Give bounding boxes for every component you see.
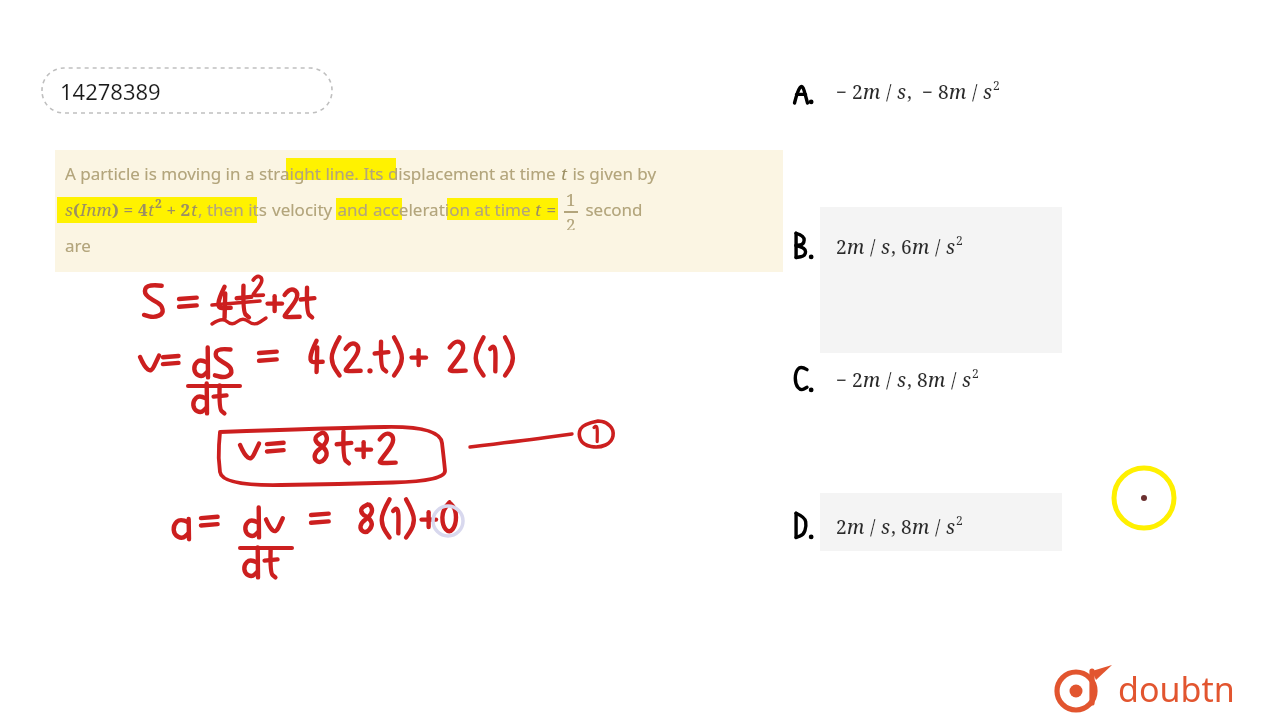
staticText: − bbox=[836, 367, 852, 393]
staticText: / bbox=[930, 234, 946, 260]
staticText: s bbox=[946, 234, 956, 260]
staticText: / bbox=[881, 79, 897, 105]
button[interactable]: 14278389 bbox=[42, 68, 332, 113]
staticText: A particle is moving in a bbox=[65, 162, 259, 185]
button[interactable]: − bbox=[790, 360, 1062, 400]
staticText: 6 bbox=[901, 234, 912, 260]
staticText: 2 bbox=[993, 77, 1000, 93]
staticText: acceleration bbox=[373, 198, 470, 221]
staticText: 2 bbox=[956, 232, 963, 248]
staticText: m bbox=[863, 367, 881, 393]
staticText: is given by bbox=[568, 162, 657, 185]
staticText: and bbox=[333, 198, 373, 221]
staticText: velocity bbox=[272, 198, 333, 221]
staticText: m bbox=[847, 514, 865, 540]
staticText: 14278389 bbox=[60, 76, 161, 106]
staticText: , then its bbox=[198, 198, 272, 221]
staticText: 1 bbox=[566, 188, 576, 211]
staticText: s bbox=[983, 79, 993, 105]
staticText: , bbox=[907, 79, 922, 105]
staticText: m bbox=[949, 79, 967, 105]
staticText: s bbox=[65, 198, 73, 221]
staticText: t bbox=[191, 198, 198, 221]
staticText: t bbox=[148, 198, 155, 221]
staticText: / bbox=[865, 514, 881, 540]
staticText: t bbox=[535, 198, 542, 221]
staticText: ( bbox=[73, 198, 80, 221]
staticText: s bbox=[881, 234, 891, 260]
staticText: , bbox=[891, 234, 901, 260]
staticText: 8 bbox=[917, 367, 928, 393]
staticText: m bbox=[847, 234, 865, 260]
staticText: / bbox=[967, 79, 983, 105]
staticText: 2 bbox=[852, 79, 863, 105]
staticText: 4 bbox=[138, 198, 148, 221]
staticText: , bbox=[907, 367, 917, 393]
staticText: ) bbox=[112, 198, 119, 221]
staticText: m bbox=[912, 514, 930, 540]
staticText: second bbox=[581, 198, 643, 221]
staticText: / bbox=[946, 367, 962, 393]
staticText: m bbox=[863, 79, 881, 105]
staticText: 2 bbox=[836, 514, 847, 540]
staticText: straight line. bbox=[259, 162, 359, 185]
staticText: / bbox=[881, 367, 897, 393]
staticText: = bbox=[542, 198, 561, 221]
button[interactable]: Doubtnut bbox=[1056, 668, 1238, 714]
staticText: , bbox=[891, 514, 901, 540]
staticText: s bbox=[946, 514, 956, 540]
staticText: Inm bbox=[80, 198, 112, 221]
staticText: 8 bbox=[901, 514, 912, 540]
staticText: + 2 bbox=[162, 198, 191, 221]
button[interactable]: − bbox=[790, 72, 1062, 112]
staticText: s bbox=[881, 514, 891, 540]
staticText: are bbox=[65, 234, 91, 257]
staticText: 2 bbox=[566, 213, 576, 230]
staticText: at time bbox=[470, 198, 535, 221]
button[interactable]: 2 bbox=[790, 507, 1062, 547]
staticText: / bbox=[865, 234, 881, 260]
staticText: m bbox=[928, 367, 946, 393]
staticText: 2 bbox=[972, 365, 979, 381]
staticText: s bbox=[962, 367, 972, 393]
staticText: 2 bbox=[155, 195, 162, 211]
staticText: Its displacement at time bbox=[359, 162, 561, 185]
staticText: − bbox=[836, 79, 852, 105]
button[interactable]: 2 bbox=[790, 227, 1062, 267]
staticText: − bbox=[922, 79, 938, 105]
staticText: s bbox=[897, 367, 907, 393]
staticText: = bbox=[119, 198, 138, 221]
staticText: 2 bbox=[956, 512, 963, 528]
staticText: / bbox=[930, 514, 946, 540]
staticText: s bbox=[897, 79, 907, 105]
staticText: doubtnut bbox=[1118, 666, 1238, 712]
staticText: t bbox=[561, 162, 568, 185]
staticText: 8 bbox=[938, 79, 949, 105]
staticText: m bbox=[912, 234, 930, 260]
staticText: 2 bbox=[852, 367, 863, 393]
staticText: 2 bbox=[836, 234, 847, 260]
